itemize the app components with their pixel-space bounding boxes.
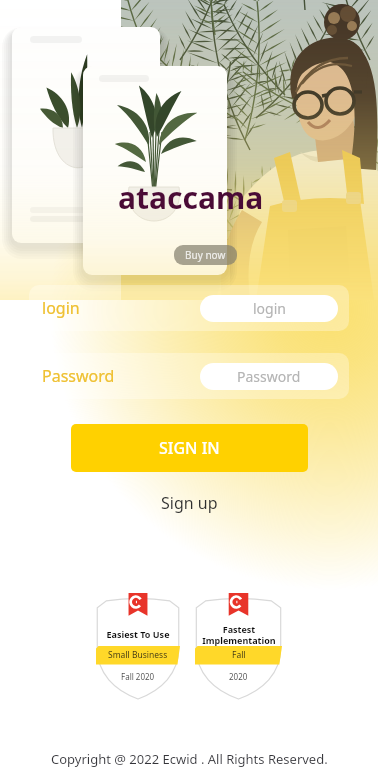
staticText: login	[253, 299, 286, 318]
staticText: 2020	[229, 671, 248, 682]
staticText: ataccama	[118, 177, 264, 218]
button[interactable]: Buy now	[174, 245, 237, 265]
staticText: Password	[42, 365, 115, 387]
button[interactable]: Sign up	[151, 488, 228, 518]
staticText: Easiest To Use	[106, 628, 170, 640]
staticText: Fall	[232, 649, 246, 661]
staticText: login	[42, 297, 80, 319]
staticText: Sign up	[161, 492, 218, 514]
staticText: Password	[237, 367, 301, 386]
staticText: Fall 2020	[121, 671, 155, 682]
staticText: SIGN IN	[159, 437, 220, 459]
staticText: Copyright @ 2022 Ecwid . All Rights Rese…	[51, 750, 328, 768]
staticText: Buy now	[185, 248, 226, 262]
button[interactable]: login	[29, 285, 349, 331]
button[interactable]: Password	[29, 353, 349, 399]
button[interactable]: SIGN IN	[71, 424, 308, 472]
staticText: Fastest Implementation	[202, 623, 276, 646]
staticText: Small Business	[108, 649, 168, 661]
